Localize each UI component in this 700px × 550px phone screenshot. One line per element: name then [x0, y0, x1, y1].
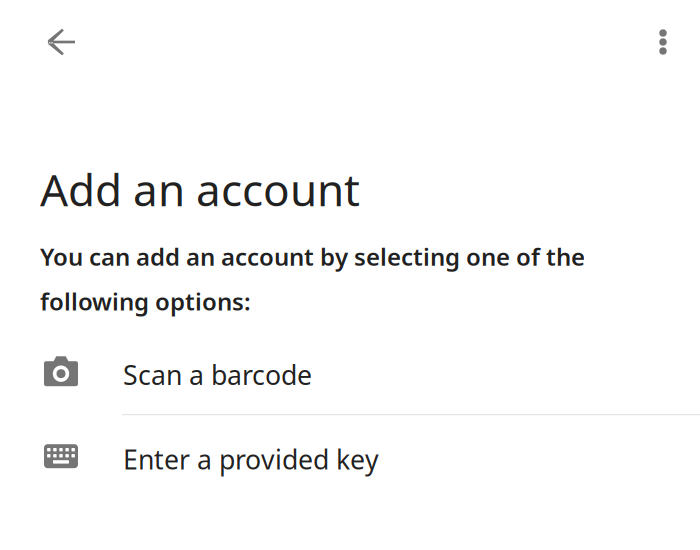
button[interactable]: Back	[33, 14, 89, 70]
button[interactable]: More options	[637, 14, 689, 70]
button[interactable]: Scan a barcode	[0, 327, 700, 414]
staticText: Scan a barcode	[123, 357, 312, 392]
staticText: You can add an account by selecting one …	[40, 240, 585, 317]
staticText: Add an account	[40, 160, 360, 218]
staticText: Enter a provided key	[123, 441, 379, 477]
button[interactable]: Enter a provided key	[0, 415, 700, 495]
